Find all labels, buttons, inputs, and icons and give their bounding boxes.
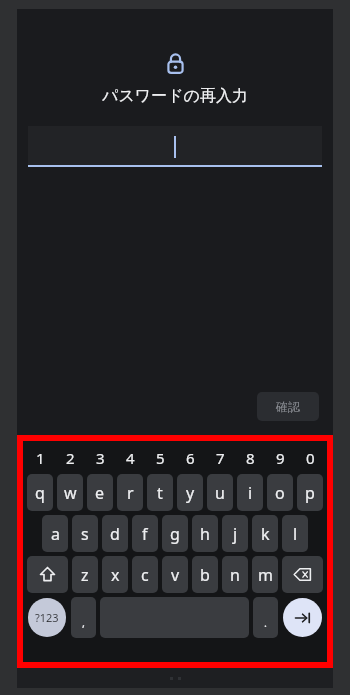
button[interactable]: v [162, 556, 188, 593]
button[interactable]: 7 [205, 444, 235, 472]
staticText: k [261, 523, 270, 545]
staticText: d [110, 523, 120, 545]
button[interactable]: f [132, 515, 158, 552]
staticText: 2 [66, 448, 75, 468]
button[interactable]: . [253, 597, 278, 638]
button[interactable]: i [237, 474, 263, 511]
button[interactable]: h [192, 515, 218, 552]
button[interactable]: q [27, 474, 53, 511]
staticText: 5 [156, 448, 165, 468]
button[interactable]: b [192, 556, 218, 593]
button[interactable] [28, 126, 322, 167]
staticText: 8 [246, 448, 255, 468]
button[interactable]: 1 [25, 444, 55, 472]
staticText: l [293, 523, 298, 545]
button[interactable]: 確認 [257, 392, 319, 421]
staticText: u [215, 482, 225, 504]
button[interactable]: u [207, 474, 233, 511]
button[interactable]: x [102, 556, 128, 593]
staticText: s [81, 523, 89, 545]
staticText: ?123 [35, 610, 59, 625]
staticText: 4 [126, 448, 135, 468]
button[interactable]: k [252, 515, 278, 552]
button[interactable]: Backspace [282, 556, 323, 593]
button[interactable]: Enter [283, 598, 322, 637]
button[interactable]: t [147, 474, 173, 511]
button[interactable]: 3 [85, 444, 115, 472]
staticText: m [258, 564, 273, 586]
staticText: b [200, 564, 210, 586]
button[interactable]: Shift [27, 556, 68, 593]
button[interactable]: o [267, 474, 293, 511]
button[interactable]: 6 [175, 444, 205, 472]
button[interactable]: 8 [235, 444, 265, 472]
staticText: z [81, 564, 89, 586]
staticText: 9 [276, 448, 285, 468]
staticText: w [64, 482, 77, 504]
staticText: f [142, 523, 148, 545]
button[interactable]: 4 [115, 444, 145, 472]
staticText: 3 [96, 448, 105, 468]
staticText: 確認 [276, 399, 300, 414]
button[interactable]: y [177, 474, 203, 511]
button[interactable]: d [102, 515, 128, 552]
button[interactable]: 0 [295, 444, 325, 472]
staticText: , [82, 615, 85, 630]
staticText: 6 [186, 448, 195, 468]
button[interactable]: s [72, 515, 98, 552]
staticText: c [141, 564, 149, 586]
staticText: 1 [36, 448, 45, 468]
button[interactable]: 2 [55, 444, 85, 472]
staticText: r [127, 482, 134, 504]
button[interactable]: ?123 [28, 598, 66, 637]
staticText: h [200, 523, 210, 545]
staticText: . [264, 615, 267, 630]
button[interactable]: n [222, 556, 248, 593]
staticText: パスワードの再入力 [17, 86, 333, 106]
staticText: v [171, 564, 180, 586]
button[interactable]: m [252, 556, 278, 593]
staticText: 0 [306, 448, 315, 468]
button[interactable]: e [87, 474, 113, 511]
staticText: o [275, 482, 285, 504]
staticText: q [35, 482, 45, 504]
button[interactable]: a [42, 515, 68, 552]
staticText: t [157, 482, 163, 504]
button[interactable]: l [282, 515, 308, 552]
button[interactable]: r [117, 474, 143, 511]
button[interactable]: j [222, 515, 248, 552]
staticText: x [111, 564, 120, 586]
staticText: y [186, 482, 195, 504]
button[interactable]: z [72, 556, 98, 593]
button[interactable]: g [162, 515, 188, 552]
staticText: a [51, 523, 60, 545]
button[interactable]: w [57, 474, 83, 511]
staticText: g [170, 523, 180, 545]
staticText: i [248, 482, 253, 504]
staticText: 7 [216, 448, 225, 468]
staticText: e [95, 482, 105, 504]
button[interactable]: c [132, 556, 158, 593]
button[interactable]: , [71, 597, 96, 638]
button[interactable]: p [297, 474, 323, 511]
other: Lock [163, 51, 188, 76]
staticText: p [305, 482, 315, 504]
staticText: n [230, 564, 240, 586]
button[interactable]: 9 [265, 444, 295, 472]
button[interactable]: 5 [145, 444, 175, 472]
staticText: j [233, 523, 238, 545]
